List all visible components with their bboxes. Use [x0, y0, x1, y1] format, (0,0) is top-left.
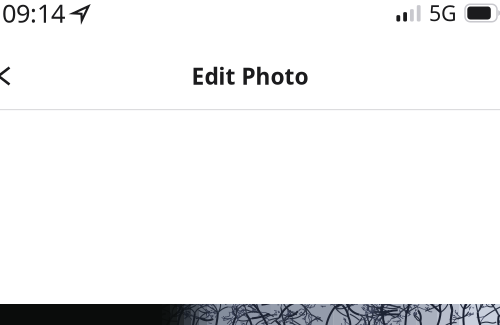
button[interactable]: Back [0, 41, 24, 111]
staticText: 5G [429, 0, 457, 27]
staticText: Edit Photo [191, 61, 308, 91]
staticText: 09:14 [2, 0, 65, 30]
